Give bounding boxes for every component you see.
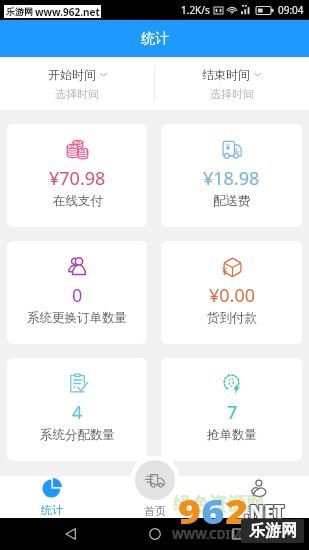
staticText: .NET [243,499,284,522]
staticText: www.962.net [35,5,100,18]
button[interactable]: ¥18.98 [161,124,302,227]
button[interactable]: 首页 [135,460,175,500]
staticText: 绿色资源网 [173,493,264,516]
staticText: 货到付款 [207,310,257,326]
staticText: ¥70.98 [49,166,106,191]
button[interactable]: 0 [7,241,147,344]
button[interactable]: 我的 [206,478,309,517]
staticText: 乐游网 [249,521,297,541]
staticText: .NET [245,499,286,522]
staticText: .NET [244,500,285,523]
button[interactable]: Home [142,521,168,547]
staticText: ¥18.98 [203,166,260,191]
staticText: 乐游网 [6,6,33,17]
staticText: 首页 [144,504,166,518]
staticText: .NET [245,501,286,524]
staticText: 我的 [247,503,269,517]
staticText: 7 [227,400,238,425]
button[interactable]: ¥70.98 [7,124,147,227]
staticText: ¥0.00 [209,283,256,308]
button[interactable]: ¥0.00 [161,241,302,344]
staticText: 开始时间 [48,67,96,82]
staticText: 抢单数量 [207,427,257,443]
staticText: 在线支付 [53,193,103,209]
staticText: 配送费 [213,193,251,209]
staticText: 统计 [41,503,63,517]
staticText: .NET [243,501,284,524]
staticText: .NET [244,501,285,524]
staticText: .NET [244,499,285,522]
staticText: 2 [225,489,249,534]
button[interactable]: 结束时间 [154,67,309,101]
staticText: WWW.CDIM [172,526,242,542]
staticText: 系统更换订单数量 [27,310,127,326]
button[interactable]: 统计 [0,478,103,517]
staticText: 4 [72,400,83,425]
staticText: 选择时间 [55,87,99,101]
button[interactable]: Recents [225,521,251,547]
staticText: 9 [178,489,202,534]
staticText: 09:04 [278,3,304,17]
staticText: .NET [243,500,284,523]
staticText: 系统分配数量 [40,427,115,443]
button[interactable]: Back [58,521,84,547]
staticText: 选择时间 [210,87,254,101]
staticText: 0 [72,283,83,308]
button[interactable]: 7 [161,358,302,461]
staticText: 6 [202,489,225,534]
staticText: 1.2K/s [181,3,210,17]
button[interactable]: 4 [7,358,147,461]
staticText: 统计 [141,30,169,48]
staticText: .NET [245,500,286,523]
staticText: 结束时间 [202,67,250,82]
button[interactable]: 开始时间 [0,67,154,101]
